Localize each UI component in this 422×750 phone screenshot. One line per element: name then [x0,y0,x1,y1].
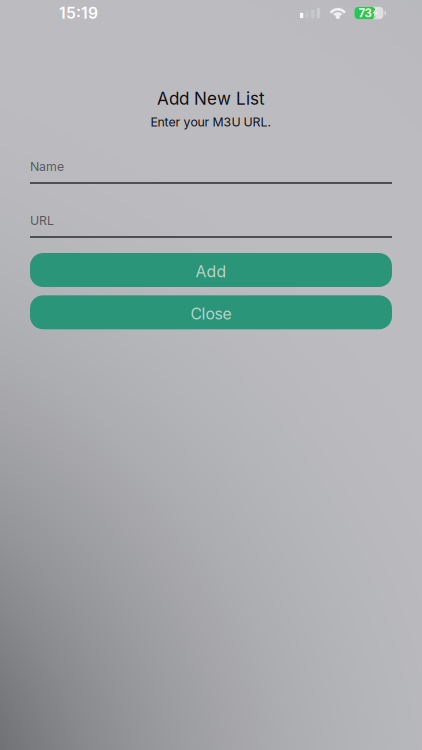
staticText: Add New List [157,88,265,109]
staticText: Enter your M3U URL. [150,114,271,129]
button[interactable]: Add [30,253,392,287]
staticText: Name [30,159,64,174]
staticText: Close [190,304,231,323]
staticText: Add [195,262,226,281]
staticText: URL [30,213,54,228]
staticText: 15:19 [59,3,98,22]
staticText: 73 [358,6,371,20]
button[interactable]: Close [30,295,392,329]
